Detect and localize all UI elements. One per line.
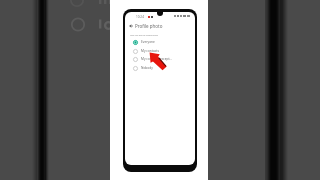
- button[interactable]: Back: [127, 22, 134, 29]
- staticText: My contacts: [141, 49, 159, 53]
- staticText: My contacts except...: [141, 57, 173, 61]
- staticText: 10:24: [136, 15, 144, 19]
- button[interactable]: My contacts except...: [125, 55, 195, 63]
- staticText: Profile photo: [135, 23, 163, 29]
- staticText: Everyone: [141, 40, 155, 44]
- button[interactable]: Everyone: [125, 38, 195, 46]
- staticText: Nobody: [141, 66, 153, 70]
- button[interactable]: Nobody: [125, 64, 195, 72]
- button[interactable]: My contacts: [125, 47, 195, 55]
- staticText: Who can see my Profile Photo: [130, 34, 158, 37]
